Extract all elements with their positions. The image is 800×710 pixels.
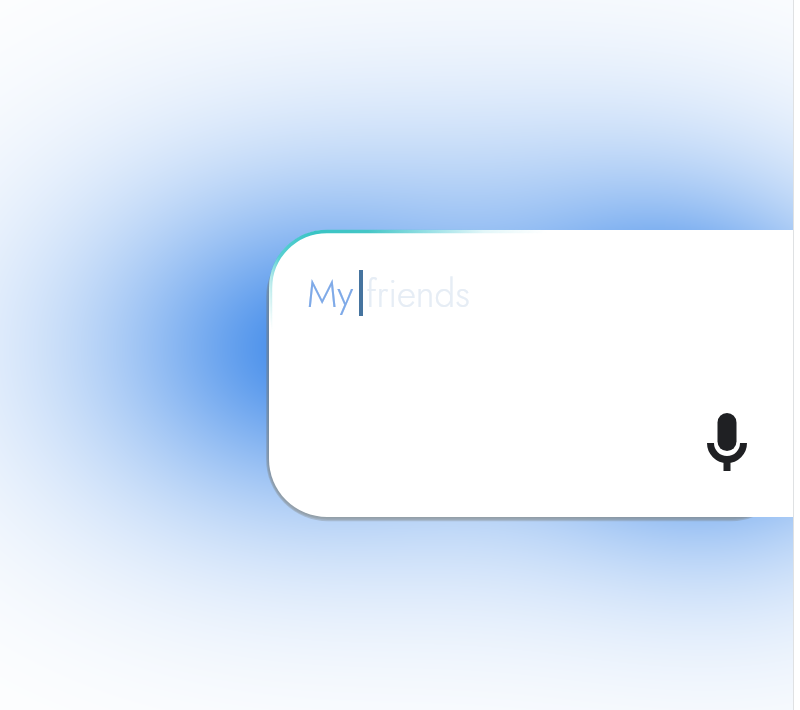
staticText: friends bbox=[366, 267, 471, 320]
button[interactable]: My bbox=[269, 230, 793, 517]
button[interactable]: Voice search bbox=[705, 411, 749, 473]
staticText: My bbox=[307, 267, 354, 320]
